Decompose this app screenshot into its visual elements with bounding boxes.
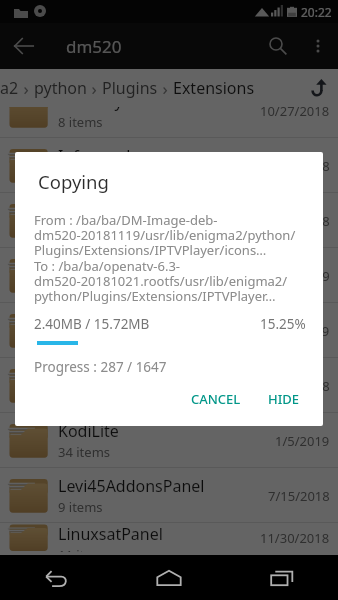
button[interactable]: Back bbox=[21, 555, 91, 600]
staticText: JediMakerXtream bbox=[58, 255, 188, 277]
button[interactable]: Infopanel bbox=[0, 138, 338, 193]
button[interactable]: JediMakerXtream bbox=[0, 248, 338, 303]
staticText: KodiDirect bbox=[58, 310, 137, 332]
staticText: 11 items bbox=[58, 546, 111, 552]
staticText: 7/15/2018 bbox=[268, 487, 330, 505]
button[interactable]: KodiMenu bbox=[0, 358, 338, 413]
staticText: IPTVPlayer bbox=[58, 90, 139, 112]
button[interactable]: More options bbox=[300, 28, 336, 64]
staticText: › bbox=[87, 77, 102, 100]
staticText: 20:22 bbox=[301, 4, 332, 20]
staticText: 18 items bbox=[58, 333, 111, 351]
button[interactable]: KodiLite bbox=[0, 413, 338, 468]
staticText: CANCEL bbox=[191, 390, 241, 408]
staticText: 12 items bbox=[58, 223, 111, 241]
button[interactable]: Home bbox=[134, 555, 204, 600]
staticText: 2.40MB / 15.72MB bbox=[34, 315, 150, 333]
staticText: 7 items bbox=[58, 278, 103, 296]
staticText: To : /ba/ba/openatv-6.3-dm520-20181021.r… bbox=[34, 257, 308, 305]
staticText: 8 items bbox=[58, 113, 103, 131]
staticText: KodiMenu bbox=[58, 365, 135, 387]
button[interactable]: Search bbox=[256, 24, 300, 68]
staticText: From : /ba/ba/DM-Image-deb-dm520-2018111… bbox=[34, 211, 308, 259]
staticText: HIDE bbox=[268, 390, 300, 408]
button[interactable]: Back bbox=[0, 23, 48, 69]
button[interactable]: a2 bbox=[0, 77, 19, 99]
button[interactable]: IPTVPlayer bbox=[0, 83, 338, 138]
staticText: LinuxsatPanel bbox=[58, 523, 163, 545]
staticText: 11/30/2018 bbox=[260, 529, 330, 547]
button[interactable]: LinuxsatPanel bbox=[0, 523, 338, 552]
staticText: Progress : 287 / 1647 bbox=[34, 358, 167, 376]
button[interactable]: Extensions bbox=[173, 77, 255, 99]
staticText: 6/3/2019 bbox=[275, 322, 330, 340]
button[interactable]: python bbox=[34, 77, 87, 99]
button[interactable]: iptvplayer bbox=[0, 193, 338, 248]
staticText: › bbox=[158, 77, 173, 100]
staticText: Infopanel bbox=[58, 145, 131, 167]
staticText: 4/19/2018 bbox=[268, 377, 330, 395]
staticText: Levi45AddonsPanel bbox=[58, 475, 205, 497]
button[interactable]: KodiDirect bbox=[0, 303, 338, 358]
button[interactable]: CANCEL bbox=[181, 382, 251, 416]
staticText: 2/11/2019 bbox=[268, 267, 330, 285]
staticText: dm520 bbox=[66, 35, 122, 58]
staticText: 10/27/2018 bbox=[260, 102, 330, 120]
staticText: 6 items bbox=[58, 168, 103, 186]
staticText: 15.25% bbox=[260, 315, 306, 333]
button[interactable]: Up one level bbox=[304, 73, 334, 103]
staticText: iptvplayer bbox=[58, 200, 133, 222]
staticText: Copying bbox=[38, 169, 109, 194]
button[interactable]: HIDE bbox=[258, 382, 310, 416]
staticText: 9/22/2018 bbox=[268, 212, 330, 230]
staticText: 9 items bbox=[58, 498, 103, 516]
staticText: KodiLite bbox=[58, 420, 119, 442]
button[interactable]: Levi45AddonsPanel bbox=[0, 468, 338, 523]
staticText: 1/5/2019 bbox=[275, 432, 330, 450]
button[interactable]: Recents bbox=[247, 555, 317, 600]
staticText: 3/14/2018 bbox=[268, 157, 330, 175]
staticText: 34 items bbox=[58, 443, 111, 461]
button[interactable]: Plugins bbox=[102, 77, 158, 99]
staticText: › bbox=[19, 77, 34, 100]
